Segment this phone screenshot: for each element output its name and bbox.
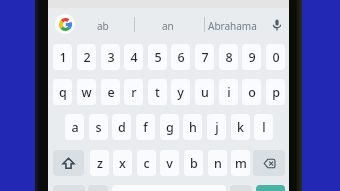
staticText: q: [59, 84, 67, 101]
button[interactable]: 4: [124, 44, 143, 70]
staticText: c: [143, 155, 150, 172]
button[interactable]: h: [183, 114, 202, 140]
staticText: l: [262, 119, 266, 136]
button[interactable]: u: [195, 79, 214, 105]
staticText: k: [237, 119, 244, 136]
staticText: b: [190, 155, 198, 172]
button[interactable]: o: [242, 79, 261, 105]
staticText: p: [272, 84, 280, 101]
button[interactable]: Backspace: [253, 150, 285, 176]
button[interactable]: Enter: [256, 185, 285, 191]
button[interactable]: 9: [242, 44, 261, 70]
button[interactable]: d: [112, 114, 131, 140]
staticText: j: [215, 119, 219, 136]
staticText: ab: [97, 19, 109, 33]
button[interactable]: Shift: [53, 150, 84, 176]
button[interactable]: 7: [195, 44, 214, 70]
button[interactable]: m: [231, 150, 250, 176]
button[interactable]: 8: [219, 44, 238, 70]
button[interactable]: j: [207, 114, 226, 140]
button[interactable]: c: [137, 150, 156, 176]
staticText: 2: [83, 49, 91, 66]
button[interactable]: s: [89, 114, 108, 140]
staticText: 7: [201, 49, 209, 66]
staticText: 1: [59, 49, 67, 66]
staticText: an: [162, 19, 174, 33]
button[interactable]: Voice input: [270, 18, 283, 31]
button[interactable]: y: [171, 79, 190, 105]
staticText: 4: [130, 49, 138, 66]
staticText: y: [177, 84, 184, 101]
button[interactable]: z: [90, 150, 109, 176]
staticText: Abrahama: [208, 19, 257, 33]
button[interactable]: 2: [77, 44, 96, 70]
button[interactable]: l: [254, 114, 273, 140]
button[interactable]: p: [266, 79, 285, 105]
button[interactable]: w: [77, 79, 96, 105]
button[interactable]: t: [148, 79, 167, 105]
staticText: d: [118, 119, 126, 136]
staticText: 5: [154, 49, 162, 66]
staticText: v: [166, 155, 173, 172]
staticText: u: [201, 84, 209, 101]
staticText: w: [81, 84, 92, 101]
button[interactable]: 0: [266, 44, 285, 70]
staticText: s: [95, 119, 102, 136]
staticText: i: [227, 84, 231, 101]
staticText: g: [166, 119, 174, 136]
staticText: 9: [248, 49, 256, 66]
button[interactable]: 5: [148, 44, 167, 70]
staticText: h: [189, 119, 197, 136]
staticText: f: [143, 119, 148, 136]
staticText: x: [119, 155, 126, 172]
staticText: a: [71, 119, 79, 136]
button[interactable]: x: [113, 150, 132, 176]
button[interactable]: f: [136, 114, 155, 140]
button[interactable]: g: [160, 114, 179, 140]
button[interactable]: q: [53, 79, 72, 105]
button[interactable]: e: [101, 79, 120, 105]
staticText: m: [235, 155, 247, 172]
button[interactable]: n: [208, 150, 227, 176]
staticText: z: [97, 155, 103, 172]
button[interactable]: 3: [101, 44, 120, 70]
staticText: 0: [272, 49, 280, 66]
staticText: 6: [177, 49, 185, 66]
staticText: r: [131, 84, 137, 101]
staticText: 8: [225, 49, 233, 66]
button[interactable]: 6: [171, 44, 190, 70]
staticText: n: [214, 155, 222, 172]
button[interactable]: a: [65, 114, 84, 140]
button[interactable]: 1: [53, 44, 72, 70]
button[interactable]: r: [124, 79, 143, 105]
staticText: e: [107, 84, 115, 101]
button[interactable]: b: [184, 150, 203, 176]
staticText: 3: [107, 49, 115, 66]
button[interactable]: v: [160, 150, 179, 176]
button[interactable]: k: [231, 114, 250, 140]
button[interactable]: Google: [55, 14, 75, 34]
staticText: o: [248, 84, 256, 101]
staticText: t: [155, 84, 160, 101]
button[interactable]: i: [219, 79, 238, 105]
